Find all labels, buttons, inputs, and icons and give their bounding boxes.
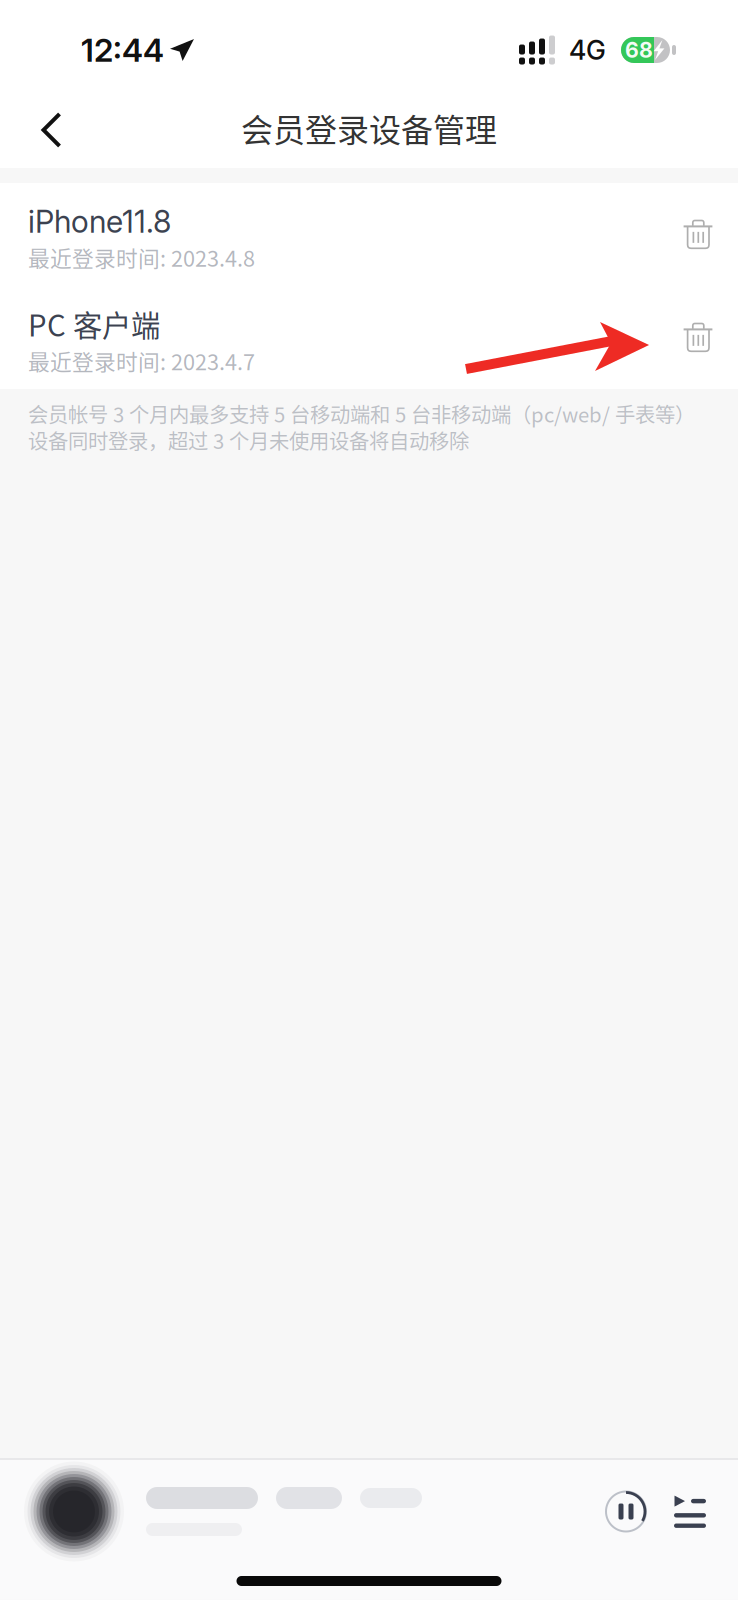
staticText: 12:44 bbox=[81, 31, 164, 69]
staticText: 会员帐号 3 个月内最多支持 5 台移动端和 5 台非移动端（pc/web/ 手… bbox=[28, 399, 695, 428]
staticText: 设备同时登录，超过 3 个月未使用设备将自动移除 bbox=[28, 425, 469, 455]
staticText: 最近登录时间: 2023.4.7 bbox=[28, 345, 255, 376]
button[interactable]: 暂停 bbox=[592, 1477, 660, 1545]
staticText: 4G bbox=[569, 34, 606, 66]
staticText: PC 客户端 bbox=[28, 302, 160, 345]
staticText: 68 bbox=[625, 37, 653, 63]
staticText: 最近登录时间: 2023.4.8 bbox=[28, 241, 255, 273]
staticText: iPhone11.8 bbox=[28, 203, 171, 240]
button[interactable]: 播放列表 bbox=[660, 1477, 720, 1545]
button[interactable]: iPhone11.8 bbox=[0, 183, 738, 286]
button[interactable]: 返回 bbox=[0, 92, 103, 168]
staticText: 会员登录设备管理 bbox=[241, 105, 497, 151]
button[interactable]: PC 客户端 bbox=[0, 286, 738, 389]
